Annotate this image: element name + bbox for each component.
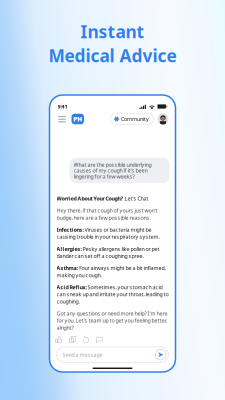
button[interactable]: Copy <box>69 336 76 343</box>
staticText: Medical Advice <box>48 44 176 67</box>
staticText: PH <box>73 115 82 123</box>
staticText: Allergies: Pesky allergens like pollen o… <box>56 245 159 259</box>
staticText: 9:41 <box>57 103 67 110</box>
staticText: Got any questions or need more help? I'm… <box>56 310 167 331</box>
button[interactable]: Community <box>110 113 153 125</box>
staticText: Community <box>121 115 149 123</box>
staticText: Hey there, if that cough of yours just w… <box>56 207 157 221</box>
button[interactable]: Home <box>71 114 84 124</box>
button[interactable]: Send <box>155 349 166 360</box>
button[interactable]: Share <box>96 336 103 343</box>
staticText: Acid Reflux: Sometimes, your stomach aci… <box>56 284 168 305</box>
staticText: Instant <box>80 20 144 43</box>
staticText: Send a message <box>62 351 102 358</box>
button[interactable]: Menu <box>56 113 67 124</box>
staticText: Asthma: Your airways might be a bit infl… <box>56 264 165 279</box>
button[interactable]: Like <box>55 336 62 343</box>
staticText: What are the possible underlying causes … <box>73 161 151 180</box>
staticText: Infections: Viruses or bacteria might be… <box>56 226 159 240</box>
staticText: Worried About Your Cough? Let's Chat <box>56 195 148 202</box>
button[interactable]: Profile <box>157 113 168 124</box>
button[interactable]: Regenerate <box>82 336 89 343</box>
